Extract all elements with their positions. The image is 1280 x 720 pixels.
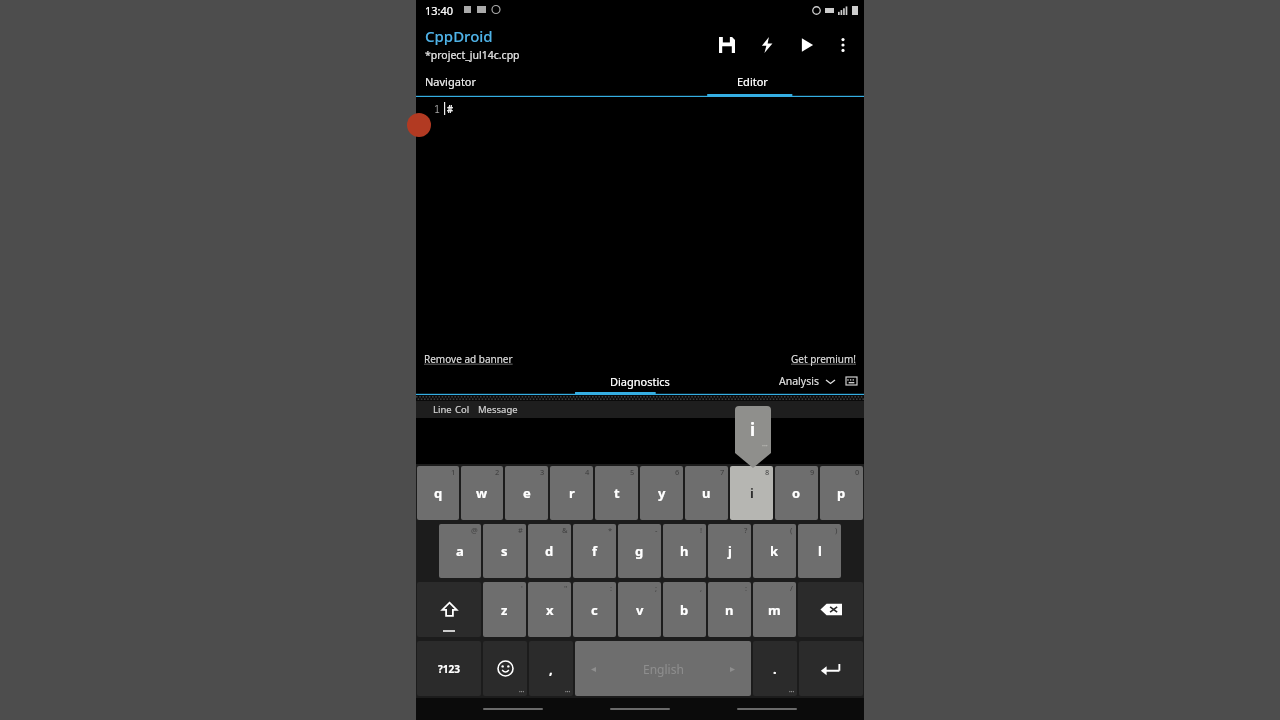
staticText: d bbox=[545, 542, 554, 560]
button[interactable]: q bbox=[417, 466, 459, 520]
button[interactable]: Keyboard bbox=[844, 374, 858, 388]
staticText: : bbox=[745, 583, 748, 593]
staticText: 2 bbox=[495, 467, 500, 477]
staticText: 6 bbox=[675, 467, 680, 477]
button[interactable]: , bbox=[529, 641, 573, 696]
staticText: @ bbox=[471, 525, 478, 535]
staticText: u bbox=[702, 484, 711, 502]
staticText: o bbox=[792, 484, 801, 502]
staticText: g bbox=[635, 542, 644, 560]
button[interactable]: c bbox=[573, 582, 616, 637]
staticText: p bbox=[837, 484, 846, 502]
button[interactable]: Diagnostics bbox=[610, 374, 670, 389]
staticText: ; bbox=[655, 583, 658, 593]
button[interactable]: b bbox=[663, 582, 706, 637]
button[interactable]: Save bbox=[714, 32, 740, 58]
button[interactable]: d bbox=[528, 524, 571, 578]
staticText: Editor bbox=[737, 74, 768, 89]
staticText: l bbox=[818, 542, 822, 560]
staticText: i bbox=[750, 418, 756, 441]
button[interactable]: k bbox=[753, 524, 796, 578]
button[interactable]: ?123 bbox=[417, 641, 481, 696]
staticText: x bbox=[546, 601, 554, 619]
staticText: w bbox=[476, 484, 488, 502]
button[interactable]: w bbox=[461, 466, 503, 520]
staticText: 1 bbox=[451, 467, 456, 477]
staticText: # bbox=[518, 525, 523, 535]
staticText: e bbox=[523, 484, 531, 502]
button[interactable]: Editor bbox=[640, 68, 864, 94]
button[interactable]: i bbox=[730, 466, 773, 520]
button[interactable]: Navigator bbox=[416, 68, 640, 94]
button[interactable]: Analysis bbox=[779, 374, 835, 388]
staticText: m bbox=[768, 601, 781, 619]
button[interactable]: v bbox=[618, 582, 661, 637]
staticText: ••• bbox=[565, 689, 571, 695]
button[interactable]: Shift bbox=[417, 582, 481, 637]
staticText: 5 bbox=[630, 467, 635, 477]
staticText: 4 bbox=[585, 467, 590, 477]
button[interactable]: y bbox=[640, 466, 683, 520]
staticText: Message bbox=[478, 403, 518, 416]
staticText: English bbox=[643, 661, 684, 677]
button[interactable]: a bbox=[439, 524, 481, 578]
staticText: h bbox=[680, 542, 689, 560]
staticText: i bbox=[750, 484, 754, 502]
staticText: . bbox=[773, 660, 777, 678]
button[interactable]: p bbox=[820, 466, 863, 520]
button[interactable]: More options bbox=[830, 32, 856, 58]
button[interactable]: z bbox=[483, 582, 526, 637]
button[interactable]: m bbox=[753, 582, 796, 637]
staticText: f bbox=[592, 542, 598, 560]
staticText: ?123 bbox=[438, 662, 460, 676]
button[interactable]: n bbox=[708, 582, 751, 637]
button[interactable]: Get premium! bbox=[791, 352, 856, 366]
button[interactable]: Backspace bbox=[798, 582, 863, 637]
staticText: Line bbox=[433, 403, 452, 416]
staticText: ••• bbox=[762, 443, 768, 450]
button[interactable]: g bbox=[618, 524, 661, 578]
button[interactable]: h bbox=[663, 524, 706, 578]
button[interactable]: x bbox=[528, 582, 571, 637]
staticText: n bbox=[725, 601, 734, 619]
button[interactable]: l bbox=[798, 524, 841, 578]
button[interactable]: Enter bbox=[799, 641, 863, 696]
staticText: t bbox=[614, 484, 620, 502]
staticText: : bbox=[610, 583, 613, 593]
staticText: 9 bbox=[810, 467, 815, 477]
button[interactable]: Build bbox=[754, 32, 780, 58]
staticText: 7 bbox=[720, 467, 725, 477]
staticText: / bbox=[790, 583, 793, 593]
staticText: 13:40 bbox=[425, 3, 454, 18]
button[interactable]: . bbox=[753, 641, 797, 696]
staticText: ••• bbox=[789, 689, 795, 695]
button[interactable]: Run bbox=[794, 32, 820, 58]
button[interactable]: e bbox=[505, 466, 548, 520]
staticText: ' bbox=[521, 583, 523, 593]
button[interactable]: Space bbox=[575, 641, 751, 696]
button[interactable]: f bbox=[573, 524, 616, 578]
staticText: Diagnostics bbox=[610, 374, 670, 389]
staticText: q bbox=[434, 484, 443, 502]
staticText: , bbox=[700, 583, 703, 593]
staticText: & bbox=[562, 525, 568, 535]
staticText: Analysis bbox=[779, 374, 819, 388]
staticText: *project_jul14c.cpp bbox=[425, 48, 520, 62]
staticText: , bbox=[549, 660, 553, 678]
staticText: * bbox=[608, 525, 613, 535]
staticText: CppDroid bbox=[425, 26, 493, 46]
button[interactable]: o bbox=[775, 466, 818, 520]
button[interactable]: j bbox=[708, 524, 751, 578]
staticText: ! bbox=[700, 525, 703, 535]
button[interactable]: s bbox=[483, 524, 526, 578]
staticText: Col bbox=[455, 403, 470, 416]
staticText: Navigator bbox=[425, 74, 477, 89]
staticText: ? bbox=[744, 525, 748, 535]
button[interactable]: Remove ad banner bbox=[424, 352, 513, 366]
button[interactable]: r bbox=[550, 466, 593, 520]
button[interactable]: u bbox=[685, 466, 728, 520]
button[interactable]: t bbox=[595, 466, 638, 520]
staticText: z bbox=[501, 601, 508, 619]
button[interactable]: Emoji bbox=[483, 641, 527, 696]
staticText: v bbox=[636, 601, 644, 619]
